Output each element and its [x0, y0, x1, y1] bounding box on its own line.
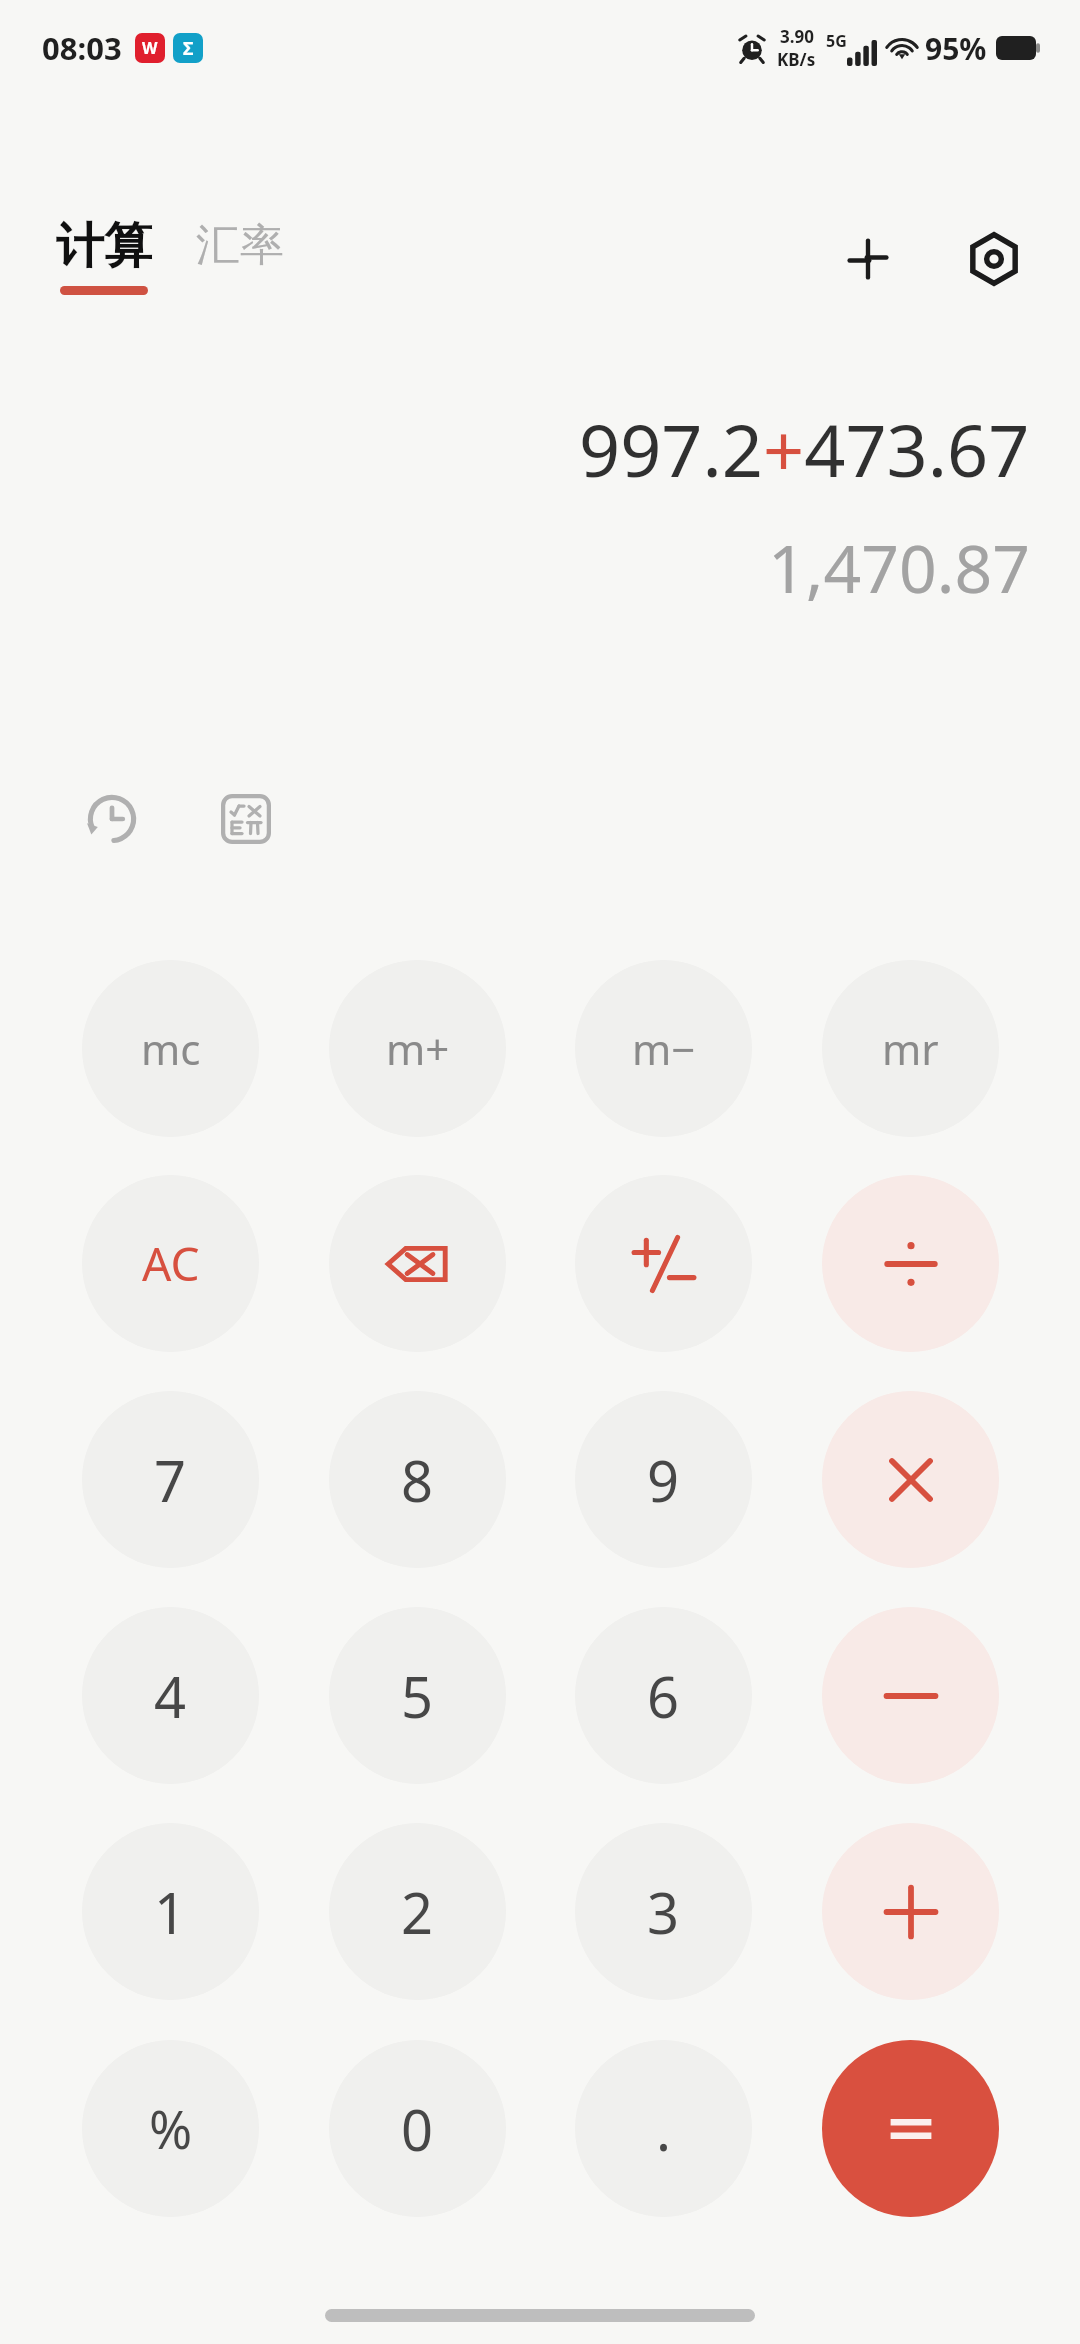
staticText: 8	[401, 1442, 434, 1518]
button[interactable]: Settings	[958, 223, 1030, 295]
staticText: .	[656, 2091, 672, 2167]
staticText: 7	[154, 1442, 187, 1518]
button[interactable]: 7	[82, 1391, 259, 1568]
button[interactable]: 计算	[56, 216, 152, 295]
staticText: Σ	[183, 36, 194, 61]
button[interactable]: .	[575, 2040, 752, 2217]
staticText: 95%	[925, 28, 987, 69]
button[interactable]: 5	[329, 1607, 506, 1784]
button[interactable]: Backspace	[329, 1175, 506, 1352]
staticText: AC	[142, 1232, 200, 1295]
button[interactable]: 3	[575, 1823, 752, 2000]
button[interactable]: 1	[82, 1823, 259, 2000]
staticText: mr	[882, 1020, 939, 1077]
button[interactable]: 汇率	[196, 216, 284, 273]
button[interactable]: Multiply	[822, 1391, 999, 1568]
button[interactable]: Plus minus	[575, 1175, 752, 1352]
button[interactable]: 9	[575, 1391, 752, 1568]
staticText: m+	[386, 1020, 450, 1077]
button[interactable]: History	[78, 785, 146, 853]
button[interactable]: 6	[575, 1607, 752, 1784]
button[interactable]: m+	[329, 960, 506, 1137]
staticText: m−	[632, 1020, 696, 1077]
staticText: 3.90	[780, 25, 814, 48]
button[interactable]: Divide	[822, 1175, 999, 1352]
staticText: W	[142, 37, 158, 59]
staticText: 5	[401, 1658, 434, 1734]
button[interactable]: 4	[82, 1607, 259, 1784]
staticText: 3	[647, 1874, 680, 1950]
staticText: 2	[401, 1874, 434, 1950]
staticText: 4	[154, 1658, 187, 1734]
button[interactable]: %	[82, 2040, 259, 2217]
button[interactable]: Equals	[822, 2040, 999, 2217]
staticText: 1	[154, 1874, 187, 1950]
button[interactable]: 0	[329, 2040, 506, 2217]
staticText: %	[149, 2093, 193, 2164]
button[interactable]: Minus	[822, 1607, 999, 1784]
staticText: 5G	[826, 30, 847, 52]
button[interactable]: mc	[82, 960, 259, 1137]
staticText: KB/s	[777, 48, 816, 71]
staticText: 汇率	[196, 218, 284, 273]
staticText: 0	[401, 2091, 434, 2167]
button[interactable]: Scientific mode	[212, 785, 280, 853]
staticText: 计算	[56, 216, 152, 276]
staticText: mc	[141, 1020, 201, 1077]
button[interactable]: 2	[329, 1823, 506, 2000]
staticText: 08:03	[42, 27, 122, 69]
staticText: 1,470.87	[768, 522, 1030, 612]
button[interactable]: AC	[82, 1175, 259, 1352]
button[interactable]: mr	[822, 960, 999, 1137]
staticText: 6	[647, 1658, 680, 1734]
button[interactable]: m−	[575, 960, 752, 1137]
button[interactable]: Collapse	[832, 223, 904, 295]
staticText: 997.2+473.67	[579, 400, 1030, 498]
button[interactable]: 8	[329, 1391, 506, 1568]
button[interactable]: Plus	[822, 1823, 999, 2000]
staticText: 9	[647, 1442, 680, 1518]
